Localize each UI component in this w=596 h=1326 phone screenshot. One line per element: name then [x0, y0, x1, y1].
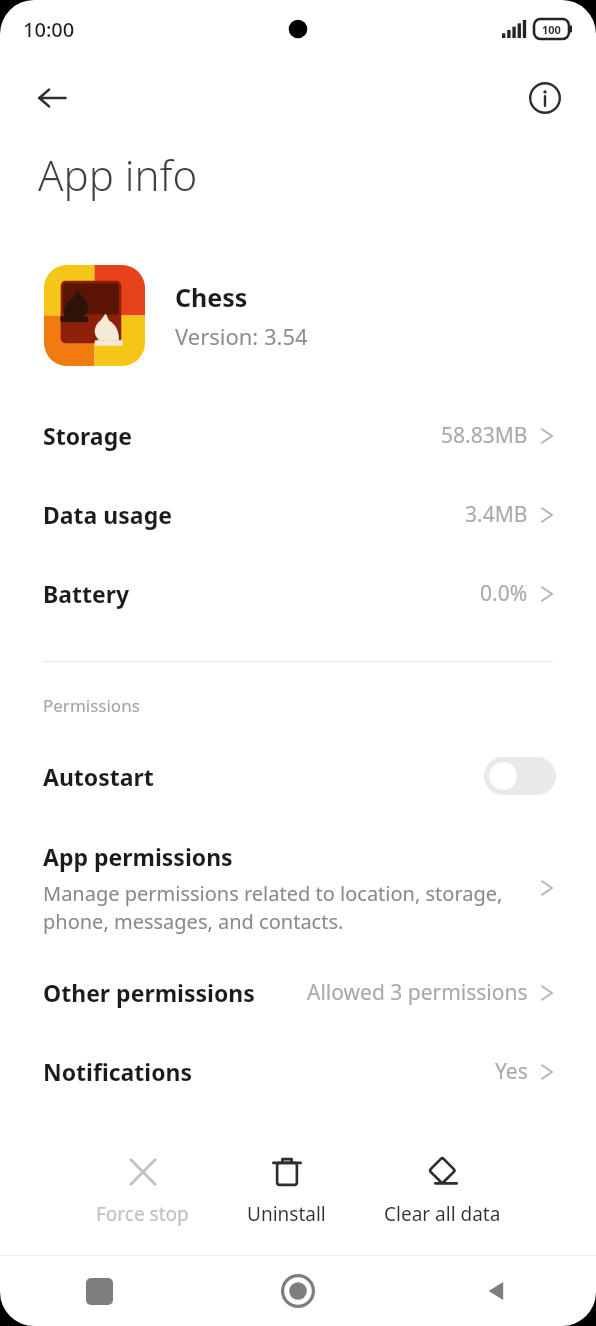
staticText: Storage	[43, 420, 132, 451]
staticText: Force stop	[96, 1201, 189, 1227]
staticText: Autostart	[43, 761, 154, 792]
staticText: Data usage	[43, 499, 172, 530]
staticText: Chess	[175, 280, 248, 314]
staticText: Permissions	[43, 694, 140, 717]
staticText: Clear all data	[384, 1201, 501, 1227]
staticText: 0.0%	[480, 579, 528, 608]
button[interactable]: Recents	[0, 1256, 198, 1326]
button[interactable]: Clear all data	[372, 1147, 513, 1233]
button[interactable]: Data usage	[0, 475, 596, 554]
staticText: Manage permissions related to location, …	[43, 880, 516, 935]
staticText: Yes	[495, 1057, 528, 1086]
button[interactable]: Back	[397, 1256, 596, 1326]
button[interactable]: Storage	[0, 396, 596, 475]
staticText: Battery	[43, 578, 130, 609]
staticText: 100	[542, 22, 561, 37]
staticText: App info	[38, 146, 198, 203]
staticText: Notifications	[43, 1056, 193, 1087]
button[interactable]: App info details	[520, 73, 570, 123]
staticText: Uninstall	[247, 1201, 326, 1227]
button[interactable]: Other permissions	[0, 953, 596, 1032]
staticText: Other permissions	[43, 977, 255, 1008]
button[interactable]: Notifications	[0, 1032, 596, 1111]
button[interactable]: Battery	[0, 554, 596, 633]
staticText: Version: 3.54	[175, 321, 308, 351]
button[interactable]: Back	[26, 72, 78, 124]
staticText: 58.83MB	[441, 421, 528, 450]
staticText: 3.4MB	[465, 500, 528, 529]
button[interactable]: Autostart	[0, 743, 596, 809]
staticText: App permissions	[43, 841, 233, 872]
button[interactable]: Home	[198, 1256, 397, 1326]
staticText: 10:00	[23, 16, 75, 43]
button[interactable]: App permissions	[0, 833, 596, 943]
staticText: Allowed 3 permissions	[307, 978, 528, 1007]
button[interactable]: Force stop	[84, 1147, 201, 1233]
button[interactable]: Uninstall	[235, 1147, 338, 1233]
